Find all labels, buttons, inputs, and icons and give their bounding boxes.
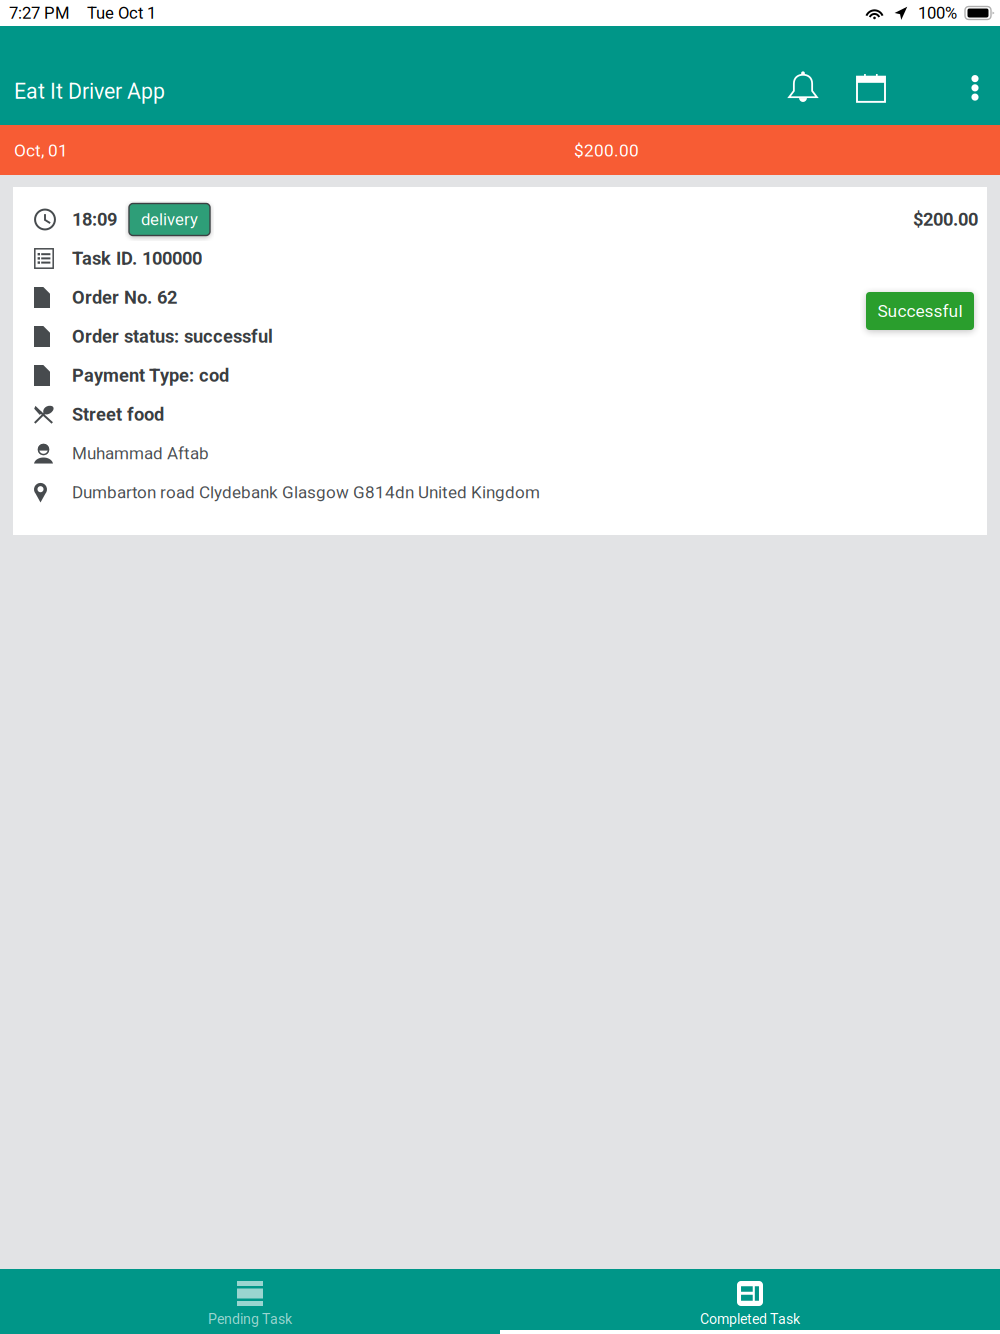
staticText: Payment Type: cod	[72, 365, 229, 386]
staticText: Eat It Driver App	[14, 79, 165, 104]
staticText: Tue Oct 1	[87, 3, 156, 23]
staticText: Oct, 01	[14, 140, 68, 161]
staticText: Street food	[72, 404, 164, 425]
button[interactable]: Pending Task	[0, 1269, 500, 1334]
staticText: 18:09	[72, 209, 117, 230]
staticText: 100%	[918, 3, 957, 23]
staticText: Dumbarton road Clydebank Glasgow G814dn …	[72, 482, 540, 502]
staticText: Task ID. 100000	[72, 248, 202, 269]
staticText: Successful	[877, 301, 962, 321]
button[interactable]: More options	[955, 66, 995, 112]
staticText: 7:27 PM	[9, 3, 70, 23]
staticText: Pending Task	[208, 1311, 292, 1328]
staticText: Muhammad Aftab	[72, 443, 209, 463]
button[interactable]: Completed Task	[500, 1269, 1000, 1334]
staticText: delivery	[141, 210, 198, 229]
staticText: Order status: successful	[72, 326, 273, 347]
staticText: $200.00	[574, 140, 639, 161]
button[interactable]: Successful	[866, 292, 974, 330]
staticText: $200.00	[913, 209, 978, 230]
staticText: Order No. 62	[72, 287, 177, 308]
button[interactable]: Notifications	[785, 66, 829, 112]
button[interactable]: Calendar	[853, 66, 897, 112]
staticText: Completed Task	[700, 1311, 800, 1328]
